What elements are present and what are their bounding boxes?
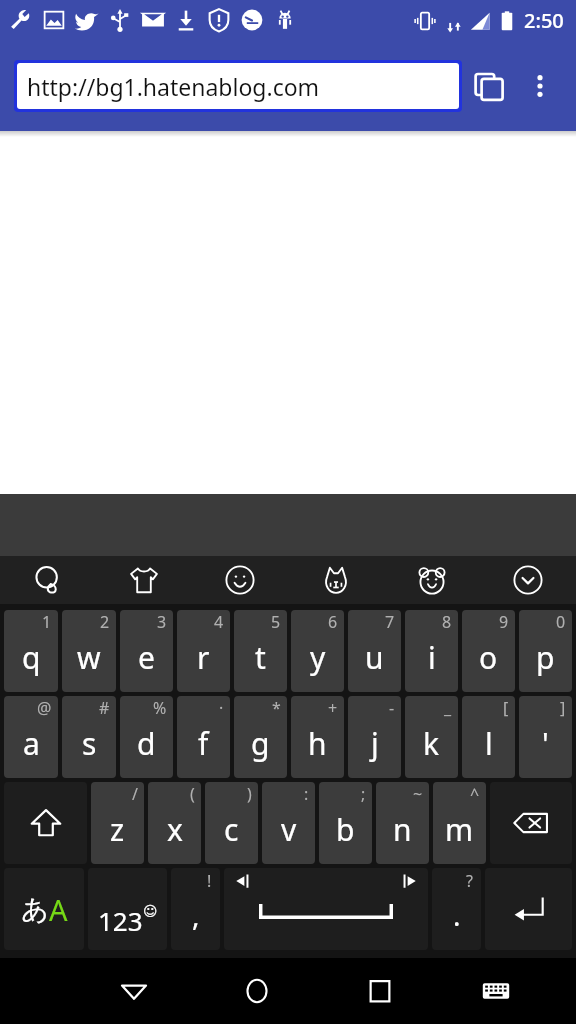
staticText: u [365, 637, 384, 678]
staticText: + [328, 697, 338, 719]
staticText: g [251, 723, 270, 764]
button[interactable]: 8 [405, 610, 458, 692]
button[interactable]: Shift [4, 782, 87, 864]
button[interactable]: ^ [433, 782, 486, 864]
button[interactable]: 4 [177, 610, 230, 692]
button[interactable]: ~ [376, 782, 429, 864]
button[interactable]: 123 [88, 868, 167, 950]
button[interactable]: Collapse [480, 556, 576, 604]
button[interactable]: # [62, 696, 116, 778]
button[interactable]: 5 [234, 610, 287, 692]
staticText: ~ [413, 783, 423, 805]
button[interactable]: 1 [4, 610, 58, 692]
staticText: 1 [42, 611, 52, 633]
button[interactable]: 2 [62, 610, 116, 692]
staticText: t [255, 637, 266, 678]
staticText: n [393, 809, 412, 850]
button[interactable]: Stickers [384, 556, 480, 604]
button[interactable]: Space [224, 868, 428, 950]
staticText: http://bg1.hatenablog.com [27, 71, 320, 102]
staticText: [ [503, 697, 509, 719]
staticText: f [198, 723, 209, 764]
button[interactable]: あ [4, 868, 84, 950]
staticText: o [479, 637, 498, 678]
staticText: i [428, 637, 436, 678]
button[interactable]: 9 [462, 610, 515, 692]
staticText: : [304, 783, 309, 805]
staticText: ☺ [143, 903, 158, 919]
button[interactable]: % [120, 696, 173, 778]
staticText: h [308, 723, 327, 764]
button[interactable]: Emoji [192, 556, 288, 604]
staticText: ^ [470, 783, 480, 805]
staticText: · [219, 697, 224, 719]
button[interactable]: + [291, 696, 344, 778]
staticText: v [281, 809, 297, 850]
button[interactable]: Backspace [490, 782, 572, 864]
staticText: ] [560, 697, 566, 719]
button[interactable]: Decoration [96, 556, 192, 604]
staticText: 7 [385, 611, 395, 633]
staticText: # [99, 697, 110, 719]
staticText: % [153, 697, 167, 719]
staticText: 2 [100, 611, 110, 633]
staticText: 3 [157, 611, 167, 633]
staticText: r [197, 637, 210, 678]
button[interactable]: Home [195, 958, 318, 1024]
staticText: 123 [98, 903, 143, 938]
staticText: 0 [556, 611, 566, 633]
button[interactable]: · [177, 696, 230, 778]
button[interactable]: 0 [519, 610, 572, 692]
staticText: d [137, 723, 156, 764]
staticText: - [389, 697, 395, 719]
staticText: _ [444, 697, 452, 719]
button[interactable]: : [262, 782, 315, 864]
button[interactable]: ? [432, 868, 481, 950]
button[interactable]: / [91, 782, 144, 864]
button[interactable]: - [348, 696, 401, 778]
staticText: w [77, 637, 101, 678]
staticText: ; [361, 783, 366, 805]
button[interactable]: Tabs [462, 58, 518, 114]
button[interactable]: 6 [291, 610, 344, 692]
button[interactable]: @ [4, 696, 58, 778]
button[interactable]: Enter [485, 868, 572, 950]
staticText: 5 [271, 611, 281, 633]
button[interactable]: ) [205, 782, 258, 864]
staticText: 6 [328, 611, 338, 633]
staticText: x [167, 809, 183, 850]
button[interactable]: 3 [120, 610, 173, 692]
staticText: A [49, 890, 68, 929]
button[interactable]: Back [73, 958, 195, 1024]
staticText: c [224, 809, 239, 850]
button[interactable]: * [234, 696, 287, 778]
button[interactable]: http://bg1.hatenablog.com [17, 63, 459, 109]
button[interactable]: Recents [318, 958, 441, 1024]
staticText: ? [466, 870, 473, 892]
button[interactable]: More options [518, 64, 562, 108]
staticText: * [272, 697, 281, 719]
button[interactable]: ! [171, 868, 220, 950]
button[interactable]: ] [519, 696, 572, 778]
staticText: z [110, 809, 125, 850]
staticText: 4 [214, 611, 224, 633]
button[interactable]: Kaomoji [288, 556, 384, 604]
staticText: . [453, 896, 461, 934]
staticText: j [371, 723, 379, 764]
staticText: y [310, 637, 326, 678]
staticText: 8 [442, 611, 452, 633]
button[interactable]: [ [462, 696, 515, 778]
button[interactable]: Search [0, 556, 96, 604]
staticText: s [82, 723, 97, 764]
staticText: ' [542, 723, 549, 764]
staticText: p [536, 637, 555, 678]
staticText: b [336, 809, 355, 850]
button[interactable]: Hide keyboard [441, 958, 551, 1024]
staticText: e [138, 637, 155, 678]
staticText: , [192, 896, 200, 934]
button[interactable]: 7 [348, 610, 401, 692]
staticText: / [132, 783, 138, 805]
button[interactable]: ( [148, 782, 201, 864]
button[interactable]: _ [405, 696, 458, 778]
button[interactable]: ; [319, 782, 372, 864]
